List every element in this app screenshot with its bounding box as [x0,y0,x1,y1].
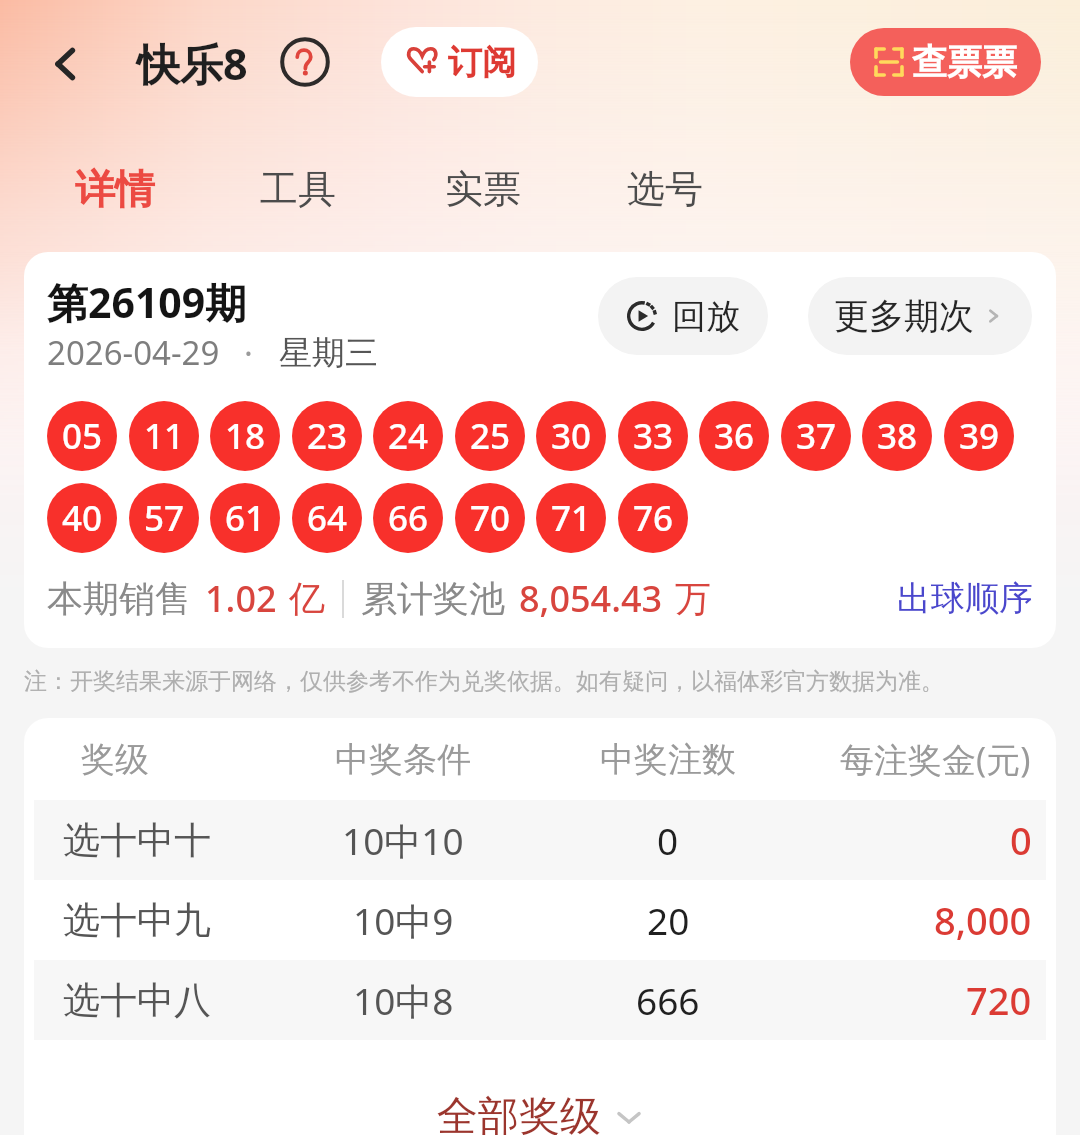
button[interactable]: 选十中八 [34,960,1046,1040]
staticText: 累计奖池 [361,576,505,621]
staticText: 720 [966,974,1032,1026]
staticText: 66 [388,494,429,542]
staticText: 20 [647,895,690,945]
staticText: 25 [470,412,511,460]
staticText: 37 [796,412,837,460]
staticText: 奖级 [81,738,149,781]
staticText: 11 [144,412,185,460]
staticText: 查票票 [912,40,1017,84]
button[interactable]: 工具 [249,152,347,226]
staticText: 18 [225,412,266,460]
staticText: 选十中九 [63,897,211,944]
staticText: 24 [388,412,429,460]
staticText: 选号 [627,165,703,213]
staticText: 中奖条件 [335,738,471,781]
staticText: 10中10 [342,815,464,866]
button[interactable]: 全部奖级 [24,1040,1056,1135]
staticText: 全部奖级 [437,1091,601,1135]
staticText: 本期销售 [47,576,191,621]
staticText: 工具 [260,165,336,213]
staticText: 亿 [289,576,325,621]
button[interactable]: 选号 [616,152,714,226]
staticText: 39 [959,412,1000,460]
button[interactable]: 选十中十 [34,800,1046,880]
staticText: 666 [636,975,700,1025]
button[interactable]: 回放 [598,277,768,355]
button[interactable]: 订阅 [381,27,538,97]
staticText: 每注奖金(元) [840,736,1031,782]
staticText: 选十中十 [63,817,211,864]
staticText: 36 [714,412,755,460]
staticText: 1.02 [205,574,277,623]
staticText: 71 [551,494,592,542]
staticText: 10中9 [353,895,454,946]
staticText: 快乐8 [137,34,248,93]
button[interactable]: 详情 [64,152,166,226]
staticText: · [244,330,253,375]
button[interactable]: 更多期次 [808,277,1032,355]
staticText: 40 [62,494,103,542]
staticText: 更多期次 [834,294,974,338]
staticText: 详情 [75,164,155,214]
staticText: 选十中八 [63,977,211,1024]
staticText: 注：开奖结果来源于网络，仅供参考不作为兑奖依据。如有疑问，以福体彩官方数据为准。 [24,667,944,696]
staticText: 33 [633,412,674,460]
staticText: 23 [307,412,348,460]
staticText: 订阅 [448,41,516,84]
staticText: 回放 [672,295,740,338]
staticText: 38 [877,412,918,460]
staticText: 第26109期 [47,274,247,330]
staticText: 0 [657,815,679,865]
button[interactable]: 查票票 [850,28,1041,96]
staticText: 中奖注数 [600,738,736,781]
button[interactable]: Help [279,36,331,88]
staticText: 实票 [445,165,521,213]
staticText: 0 [1010,814,1032,866]
staticText: 05 [62,412,103,460]
staticText: 万 [675,576,711,621]
staticText: 8,054.43 [519,574,663,623]
staticText: 64 [307,494,348,542]
button[interactable]: 选十中九 [34,880,1046,960]
staticText: 61 [225,494,266,542]
staticText: 70 [470,494,511,542]
staticText: 出球顺序 [897,577,1033,620]
button[interactable]: Back [36,34,96,94]
button[interactable]: 实票 [434,152,532,226]
button[interactable]: 出球顺序 [897,577,1033,620]
staticText: 57 [144,494,185,542]
staticText: 星期三 [279,332,378,374]
staticText: 2026-04-29 [47,330,220,375]
staticText: 76 [633,494,674,542]
staticText: 8,000 [934,894,1032,946]
staticText: 30 [551,412,592,460]
staticText: 10中8 [353,975,454,1026]
